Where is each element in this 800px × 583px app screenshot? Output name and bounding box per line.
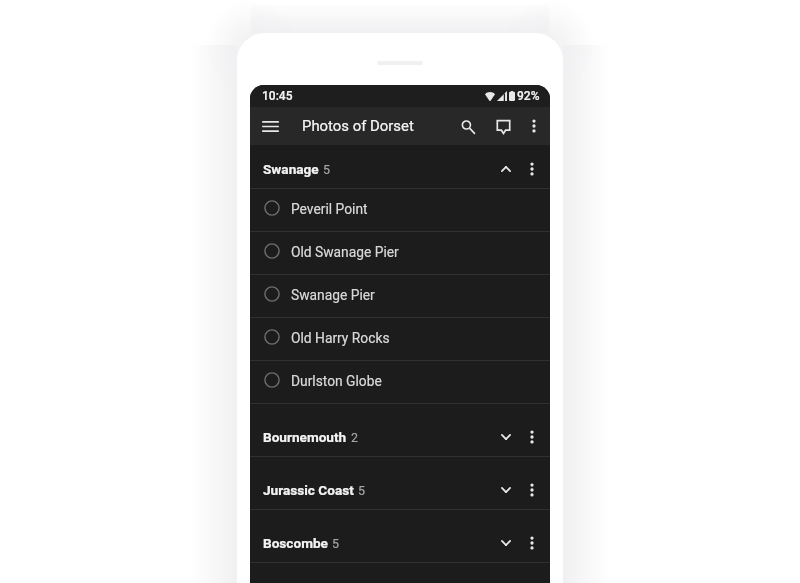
button[interactable]: Open navigation menu xyxy=(256,112,284,140)
button[interactable]: Swanage xyxy=(250,145,550,188)
button[interactable]: Section options xyxy=(518,423,546,451)
button[interactable]: Swanage Pier xyxy=(250,275,550,317)
staticText: Swanage Pier xyxy=(291,287,375,303)
button[interactable]: Section options xyxy=(518,476,546,504)
button[interactable]: Boscombe xyxy=(250,510,550,562)
button[interactable]: Bournemouth xyxy=(250,404,550,456)
button[interactable]: More options xyxy=(520,112,548,140)
button[interactable]: Durlston Globe xyxy=(250,361,550,403)
staticText: Durlston Globe xyxy=(291,373,382,389)
button[interactable]: Collapse section xyxy=(492,155,520,183)
staticText: Old Swanage Pier xyxy=(291,244,399,260)
staticText: 5 xyxy=(332,536,340,551)
staticText: Bournemouth xyxy=(263,429,347,445)
staticText: 5 xyxy=(358,483,366,498)
button[interactable]: Old Swanage Pier xyxy=(250,232,550,274)
button[interactable]: Section options xyxy=(518,529,546,557)
staticText: Peveril Point xyxy=(291,201,368,217)
button[interactable]: Comments xyxy=(489,112,518,141)
button[interactable]: Section options xyxy=(518,155,546,183)
staticText: 10:45 xyxy=(262,89,293,103)
button[interactable]: Peveril Point xyxy=(250,189,550,231)
staticText: Jurassic Coast xyxy=(263,482,354,498)
staticText: Old Harry Rocks xyxy=(291,330,390,346)
staticText: 92% xyxy=(517,89,540,103)
button[interactable]: Expand section xyxy=(492,476,520,504)
staticText: 5 xyxy=(323,162,331,177)
staticText: Swanage xyxy=(263,161,319,177)
button[interactable]: Expand section xyxy=(492,529,520,557)
button[interactable]: Expand section xyxy=(492,423,520,451)
staticText: Photos of Dorset xyxy=(302,117,414,134)
button[interactable]: Search xyxy=(454,112,483,141)
staticText: 2 xyxy=(351,430,359,445)
staticText: Boscombe xyxy=(263,535,328,551)
button[interactable]: Jurassic Coast xyxy=(250,457,550,509)
button[interactable]: Old Harry Rocks xyxy=(250,318,550,360)
